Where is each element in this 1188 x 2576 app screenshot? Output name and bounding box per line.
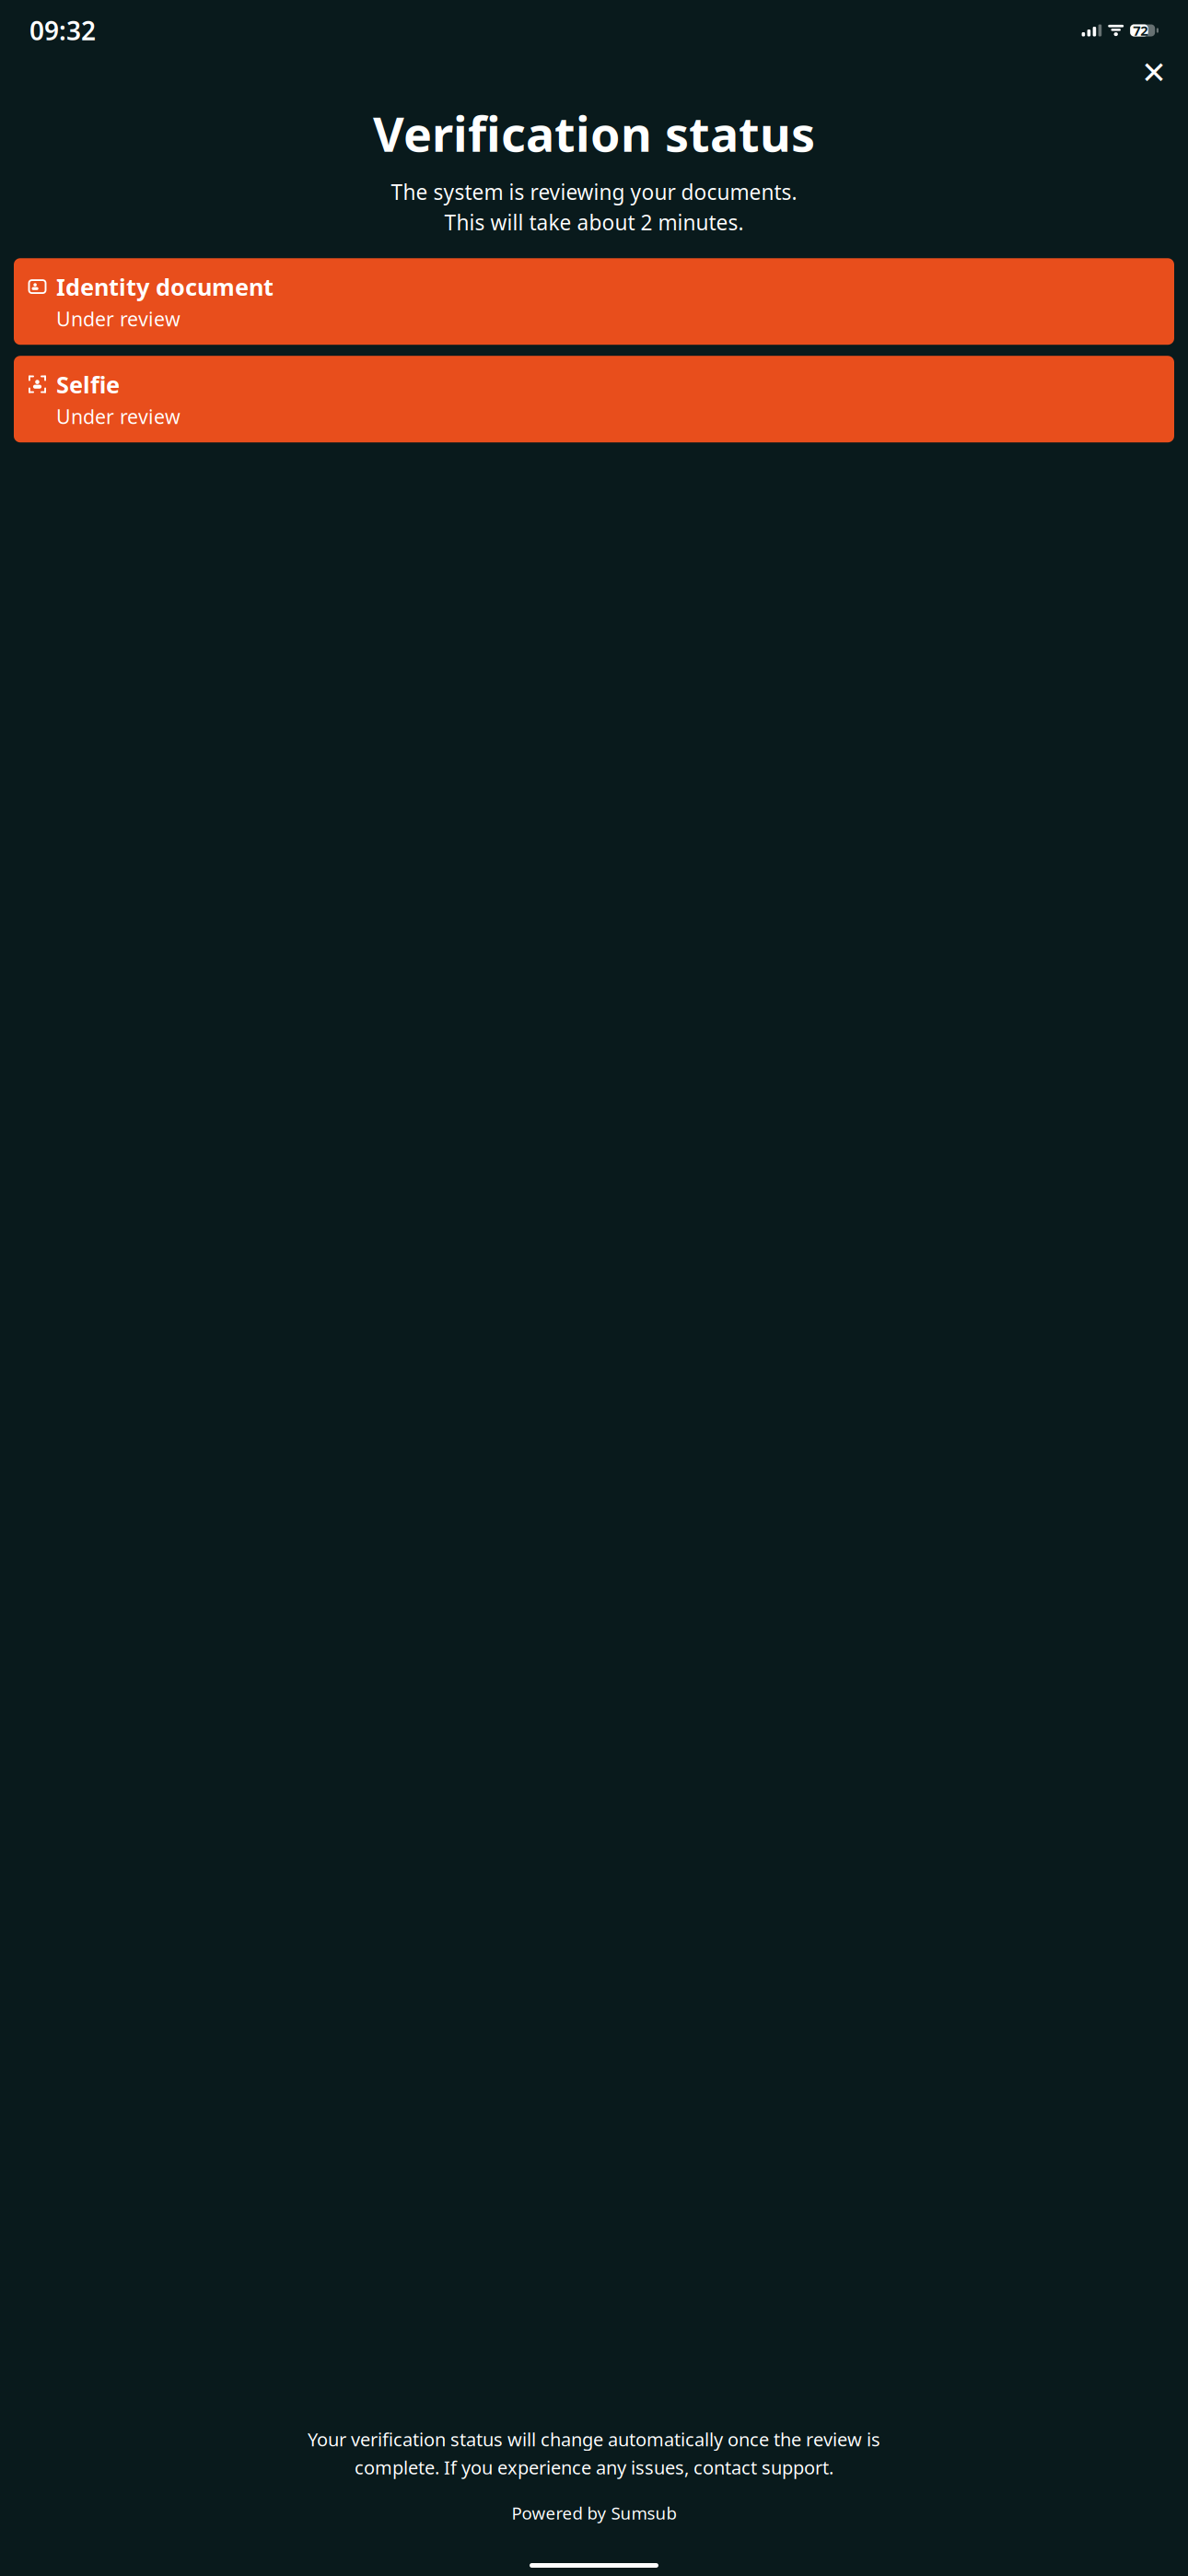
staticText: This will take about 2 minutes. [444, 208, 744, 236]
button[interactable]: Selfie [14, 356, 1174, 442]
button[interactable]: Identity document [14, 258, 1174, 345]
staticText: Identity document [56, 271, 274, 302]
staticText: Under review [56, 306, 181, 332]
staticText: Verification status [373, 101, 815, 165]
staticText: Under review [56, 403, 181, 430]
button[interactable]: Close [1133, 52, 1175, 94]
staticText: Your verification status will change aut… [308, 2427, 880, 2451]
staticText: complete. If you experience any issues, … [355, 2455, 833, 2480]
staticText: 09:32 [29, 13, 96, 48]
staticText: ✕ [1141, 55, 1167, 90]
staticText: Powered by Sumsub [512, 2502, 676, 2524]
staticText: 72 [1133, 21, 1148, 39]
staticText: Selfie [56, 369, 120, 400]
button[interactable]: Powered by Sumsub [501, 2496, 687, 2530]
staticText: The system is reviewing your documents. [391, 178, 797, 206]
